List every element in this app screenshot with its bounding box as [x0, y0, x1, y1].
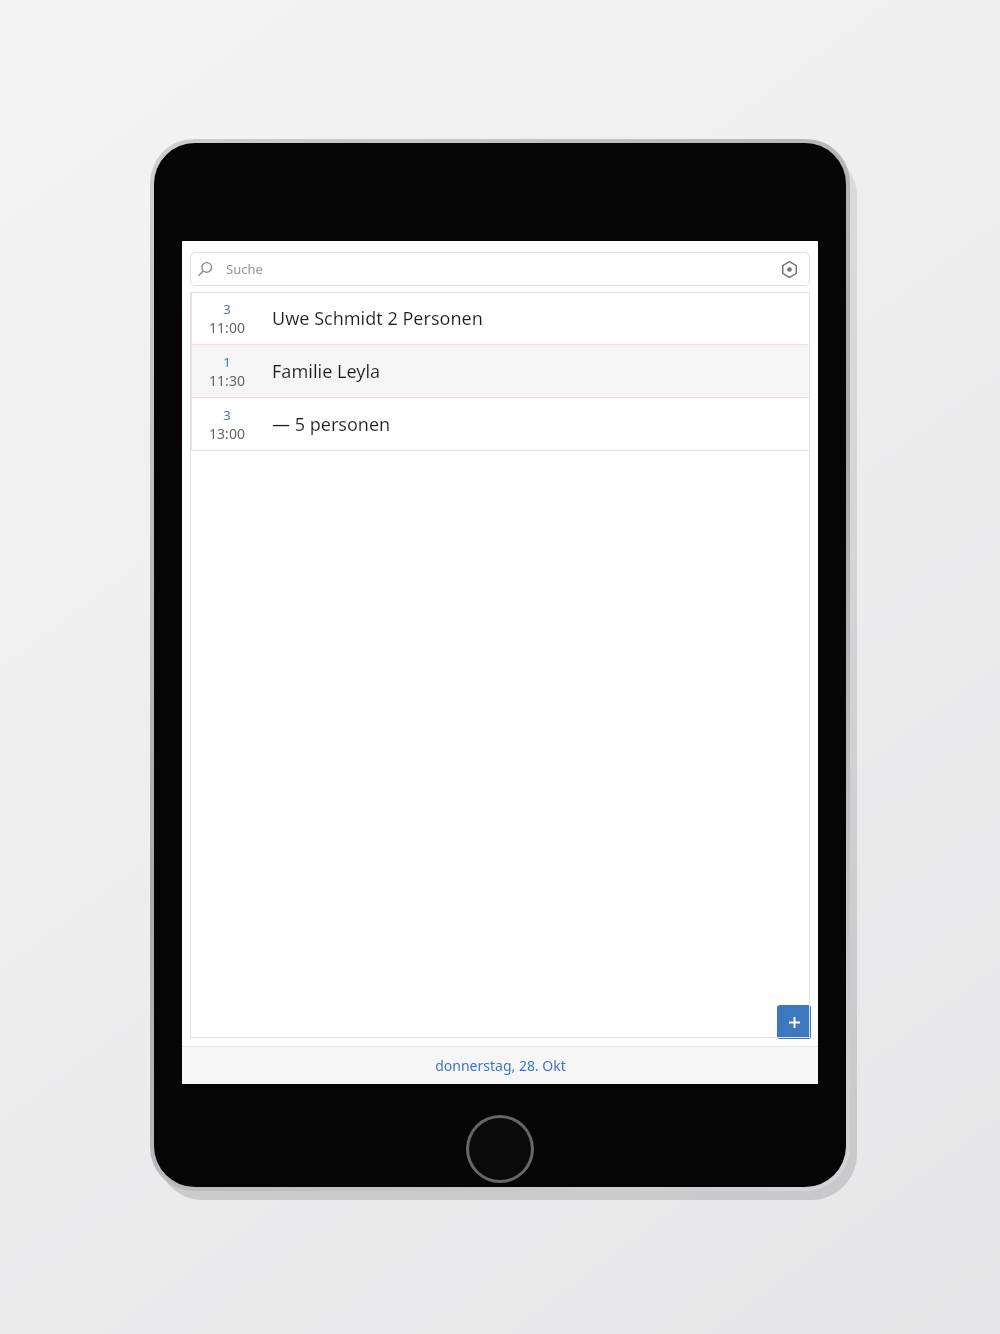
button[interactable]: 3 — [190, 398, 810, 451]
button[interactable]: Suche — [190, 252, 810, 286]
button[interactable]: Settings — [778, 258, 800, 280]
staticText: 13:00 — [209, 424, 245, 443]
staticText: 3 — [223, 406, 231, 424]
staticText: Familie Leyla — [272, 359, 381, 384]
staticText: 11:00 — [209, 318, 245, 337]
button[interactable]: donnerstag, 28. Okt — [182, 1047, 818, 1084]
staticText: 1 — [223, 353, 231, 371]
button[interactable]: 1 — [190, 345, 810, 398]
staticText: Uwe Schmidt 2 Personen — [272, 306, 483, 331]
button[interactable]: 3 — [190, 292, 810, 345]
staticText: — 5 personen — [272, 412, 391, 437]
button[interactable]: Home — [466, 1115, 534, 1183]
staticText: 3 — [223, 300, 231, 318]
staticText: Suche — [226, 260, 263, 278]
staticText: donnerstag, 28. Okt — [435, 1056, 566, 1075]
button[interactable]: Add — [777, 1005, 811, 1039]
staticText: 11:30 — [209, 371, 245, 390]
